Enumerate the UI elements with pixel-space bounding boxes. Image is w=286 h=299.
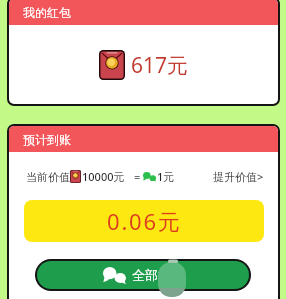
button[interactable]: 预计到账 <box>9 126 278 152</box>
button[interactable]: 全部提现 <box>37 261 249 289</box>
staticText: 预计到账 <box>23 132 71 147</box>
button[interactable]: 提升价值> <box>213 169 264 184</box>
staticText: 0.06元 <box>107 206 182 236</box>
staticText: 1元 <box>157 169 175 184</box>
staticText: 全部提现 <box>132 267 184 283</box>
staticText: 617元 <box>131 51 189 80</box>
staticText: 当前价值 <box>26 170 70 184</box>
button[interactable]: 0.06元 <box>24 200 264 242</box>
staticText: = <box>134 169 141 184</box>
button[interactable]: 我的红包 <box>9 0 278 25</box>
staticText: 10000元 <box>82 169 125 184</box>
staticText: 提升价值> <box>213 169 264 184</box>
staticText: 我的红包 <box>23 5 71 20</box>
